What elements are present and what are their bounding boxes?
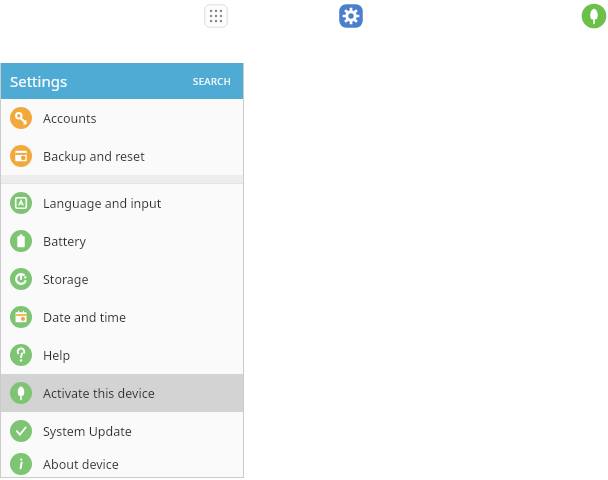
button[interactable]: Backup and reset <box>0 137 244 175</box>
button[interactable]: Activate this device <box>0 374 244 412</box>
staticText: Language and input <box>43 195 162 212</box>
button[interactable]: Accounts <box>0 99 244 137</box>
button[interactable]: SEARCH <box>191 71 234 92</box>
button[interactable]: Battery <box>0 222 244 260</box>
staticText: Activate this device <box>43 385 155 402</box>
staticText: System Update <box>43 423 132 440</box>
button[interactable]: Apps <box>202 2 230 30</box>
button[interactable]: Settings <box>337 2 365 30</box>
staticText: Storage <box>43 271 89 288</box>
button[interactable]: System Update <box>0 412 244 450</box>
staticText: SEARCH <box>193 75 232 88</box>
staticText: Backup and reset <box>43 148 145 165</box>
button[interactable]: Date and time <box>0 298 244 336</box>
staticText: Help <box>43 347 71 364</box>
button[interactable]: Help <box>0 336 244 374</box>
staticText: Settings <box>10 71 68 91</box>
button[interactable]: About device <box>0 450 244 478</box>
staticText: About device <box>43 456 119 473</box>
staticText: Battery <box>43 233 86 250</box>
button[interactable]: Storage <box>0 260 244 298</box>
button[interactable]: Language and input <box>0 184 244 222</box>
button[interactable]: Activate <box>580 2 608 30</box>
staticText: Date and time <box>43 309 127 326</box>
staticText: Accounts <box>43 110 97 127</box>
